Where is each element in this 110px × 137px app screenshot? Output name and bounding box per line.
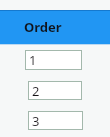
button[interactable]: Order	[0, 10, 110, 44]
staticText: Order	[24, 18, 62, 36]
button[interactable]: 2	[28, 81, 82, 100]
staticText: 3	[32, 112, 40, 130]
button[interactable]: 1	[25, 50, 82, 70]
staticText: 2	[32, 82, 40, 100]
button[interactable]: 3	[28, 111, 83, 130]
staticText: 1	[29, 51, 37, 69]
